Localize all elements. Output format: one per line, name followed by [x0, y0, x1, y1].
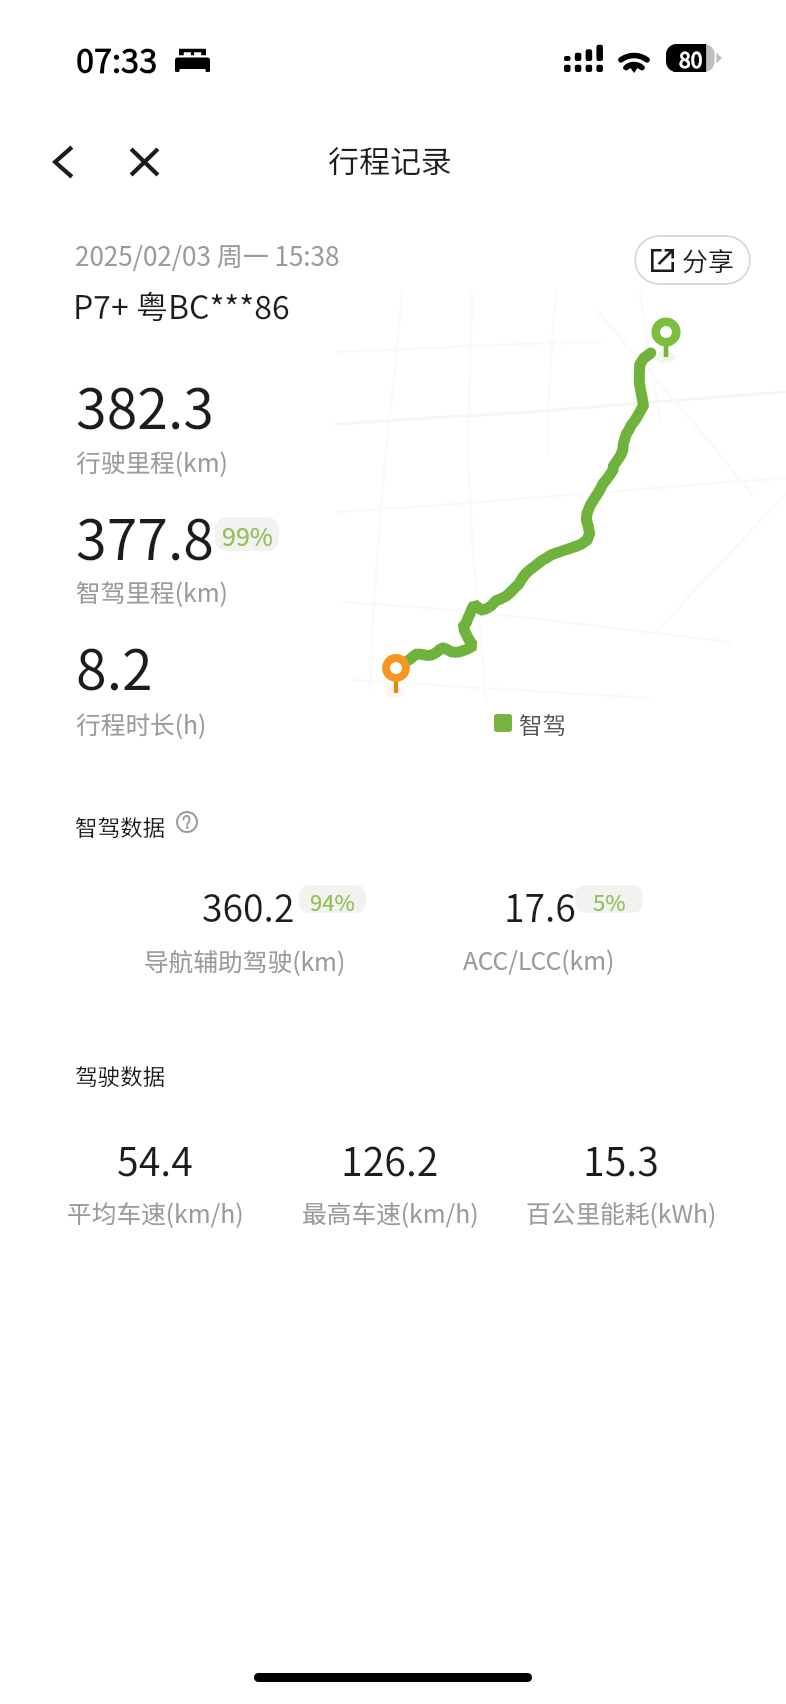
other: Info: [176, 811, 198, 833]
staticText: 2025/02/03 周一 15:38: [75, 236, 340, 274]
staticText: 377.8: [76, 496, 214, 576]
staticText: 360.2: [202, 879, 295, 933]
staticText: 行驶里程(km): [76, 443, 228, 479]
staticText: 智驾里程(km): [76, 573, 228, 609]
staticText: 最高车速(km/h): [302, 1194, 479, 1230]
staticText: 行程时长(h): [76, 705, 207, 741]
staticText: 07:33: [76, 35, 158, 82]
staticText: 智驾数据: [75, 810, 166, 843]
staticText: 17.6: [504, 879, 576, 933]
staticText: ACC/LCC(km): [463, 941, 615, 977]
staticText: 99%: [222, 517, 273, 551]
staticText: 94%: [310, 885, 355, 913]
staticText: 行程记录: [328, 137, 452, 182]
staticText: 平均车速(km/h): [67, 1194, 244, 1230]
staticText: 15.3: [583, 1131, 659, 1187]
staticText: 8.2: [76, 626, 153, 706]
button[interactable]: Back: [35, 134, 91, 190]
staticText: 导航辅助驾驶(km): [144, 942, 346, 978]
staticText: 驾驶数据: [75, 1059, 166, 1092]
staticText: 126.2: [341, 1131, 439, 1187]
button[interactable]: Close: [116, 134, 172, 190]
staticText: 80: [679, 44, 703, 72]
staticText: P7+ 粤BC***86: [73, 282, 290, 328]
staticText: 5%: [593, 885, 626, 913]
staticText: 54.4: [117, 1131, 193, 1187]
staticText: 智驾: [519, 707, 566, 741]
staticText: 百公里能耗(kWh): [526, 1194, 717, 1230]
button[interactable]: 分享: [634, 235, 751, 285]
staticText: 分享: [682, 241, 735, 279]
staticText: 382.3: [76, 365, 214, 445]
